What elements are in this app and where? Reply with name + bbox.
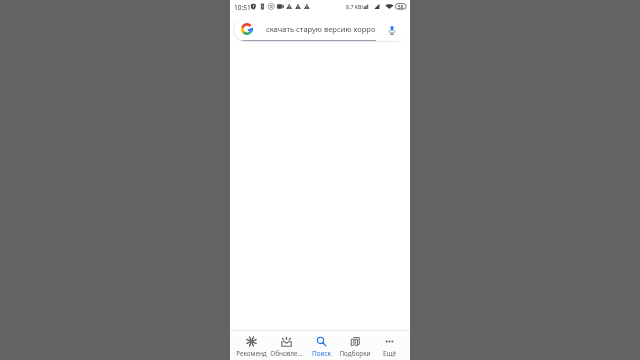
button[interactable]: Ещё	[372, 333, 406, 360]
staticText: Ещё	[383, 349, 396, 358]
staticText: Обновле…	[270, 349, 303, 358]
button[interactable]: Рекоменд…	[234, 333, 269, 360]
button[interactable]: Поиск	[304, 333, 338, 360]
button[interactable]: Voice search	[386, 24, 398, 36]
staticText: 8,7 KB/c	[346, 3, 366, 10]
button[interactable]: скачать старую версию хорро	[234, 19, 407, 41]
button[interactable]: Обновле…	[269, 333, 304, 360]
staticText: скачать старую версию хорро	[266, 24, 376, 34]
button[interactable]: Подборки	[338, 333, 372, 360]
staticText: Поиск	[312, 349, 331, 358]
staticText: 10:51	[234, 3, 251, 12]
staticText: Рекоменд…	[234, 349, 269, 358]
staticText: Подборки	[339, 349, 371, 358]
staticText: 50	[398, 4, 404, 10]
